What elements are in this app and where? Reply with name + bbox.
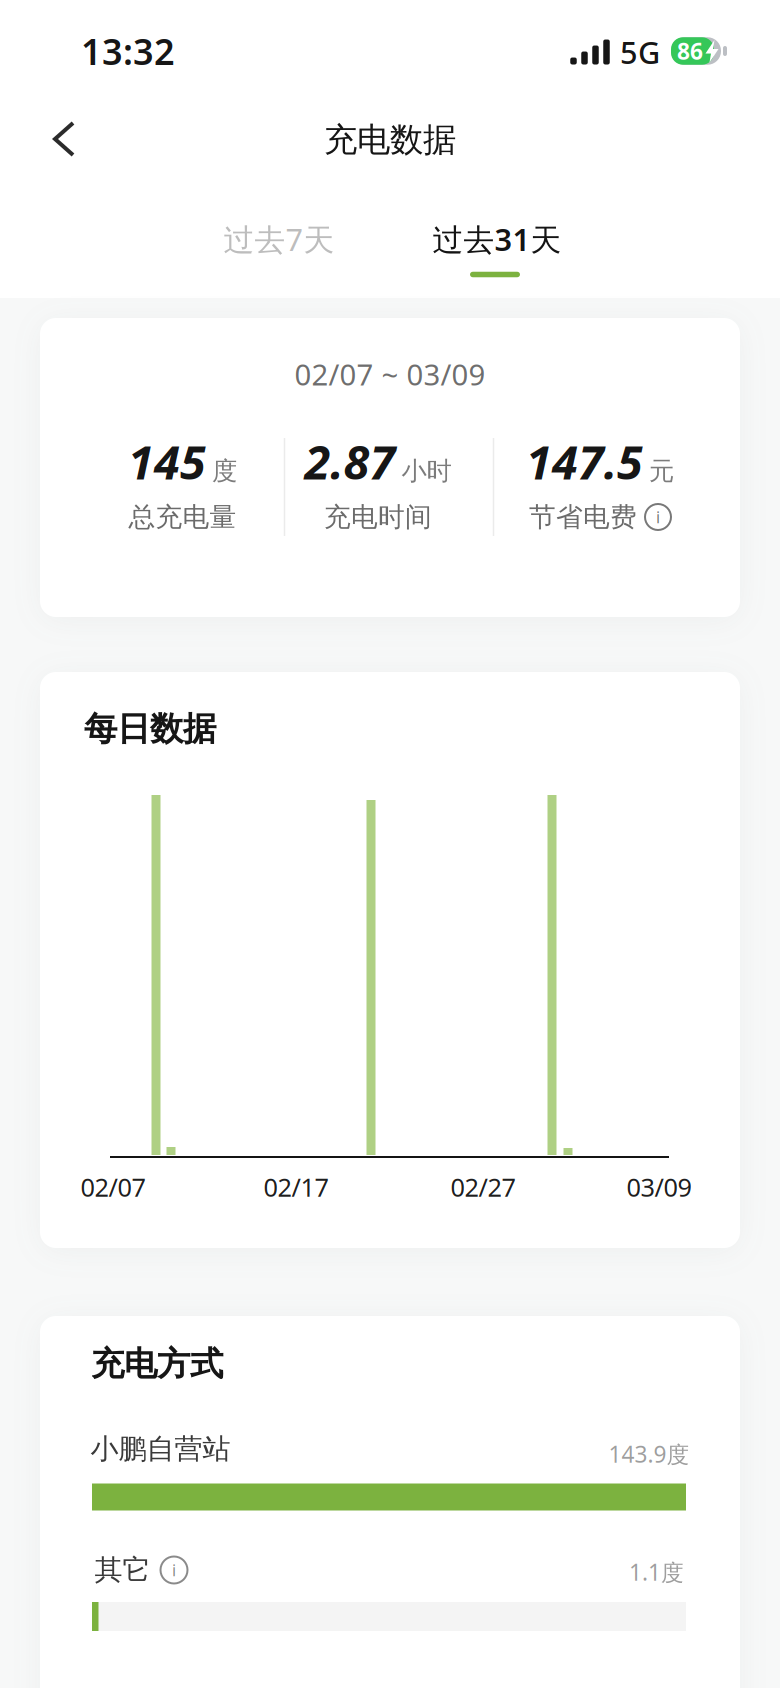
staticText: 过去7天 xyxy=(223,219,334,259)
staticText: 充电方式 xyxy=(91,1343,223,1384)
staticText: i xyxy=(172,1559,176,1581)
staticText: 度 xyxy=(212,456,237,487)
staticText: 2.87 xyxy=(304,430,395,492)
staticText: 13:32 xyxy=(81,27,175,75)
staticText: 节省电费 xyxy=(529,501,637,533)
staticText: 145 xyxy=(128,430,206,492)
staticText: 总充电量 xyxy=(128,501,236,533)
button[interactable] xyxy=(51,119,77,159)
button[interactable]: 过去7天 xyxy=(194,209,364,269)
button[interactable]: 节省电费 xyxy=(529,501,671,533)
button[interactable]: 其它 xyxy=(94,1553,187,1587)
staticText: 小时 xyxy=(401,456,451,487)
staticText: 147.5 xyxy=(526,430,643,492)
staticText: 小鹏自营站 xyxy=(90,1432,230,1466)
staticText: 143.9度 xyxy=(608,1439,689,1469)
staticText: 02/27 xyxy=(450,1170,515,1204)
staticText: 02/17 xyxy=(263,1170,328,1204)
staticText: 充电时间 xyxy=(324,501,432,533)
button[interactable]: 过去31天 xyxy=(412,209,582,269)
staticText: 每日数据 xyxy=(84,708,216,749)
staticText: 过去31天 xyxy=(432,219,561,259)
staticText: 5G xyxy=(620,32,660,72)
staticText: 02/07 ~ 03/09 xyxy=(294,354,485,393)
staticText: 其它 xyxy=(94,1553,150,1587)
staticText: 03/09 xyxy=(626,1170,691,1204)
staticText: 02/07 xyxy=(80,1170,145,1204)
staticText: 86 xyxy=(677,36,703,66)
staticText: 元 xyxy=(649,456,674,487)
staticText: i xyxy=(656,506,660,528)
staticText: 1.1度 xyxy=(629,1557,684,1587)
staticText: 充电数据 xyxy=(324,119,456,160)
